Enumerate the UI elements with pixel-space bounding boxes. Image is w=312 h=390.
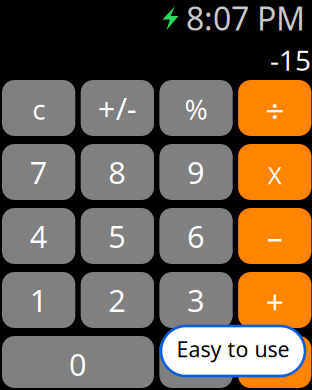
staticText: Easy to use: [176, 335, 289, 363]
button[interactable]: X: [238, 144, 311, 200]
button[interactable]: 3: [159, 272, 233, 328]
button[interactable]: 1: [2, 272, 75, 328]
staticText: 4: [30, 216, 48, 256]
staticText: ÷: [265, 88, 284, 132]
button[interactable]: c: [2, 80, 75, 136]
staticText: 8:07 PM: [186, 0, 305, 39]
button[interactable]: %: [159, 80, 233, 136]
staticText: c: [32, 90, 45, 128]
staticText: 1: [30, 280, 48, 320]
button[interactable]: 0: [2, 336, 154, 388]
button[interactable]: 4: [2, 208, 75, 264]
button[interactable]: +: [238, 272, 311, 328]
button[interactable]: =: [238, 336, 311, 388]
button[interactable]: 5: [81, 208, 154, 264]
staticText: =: [266, 341, 284, 383]
button[interactable]: Easy to use: [161, 326, 305, 376]
staticText: –: [267, 216, 283, 258]
button[interactable]: 6: [159, 208, 233, 264]
staticText: 7: [30, 152, 48, 192]
button[interactable]: ÷: [238, 80, 311, 136]
staticText: 0: [69, 344, 87, 384]
button[interactable]: .: [159, 336, 233, 388]
staticText: 3: [187, 280, 205, 320]
button[interactable]: 9: [159, 144, 233, 200]
staticText: 2: [108, 280, 126, 320]
staticText: 5: [108, 216, 126, 256]
staticText: X: [268, 159, 282, 191]
staticText: -15: [270, 41, 311, 79]
staticText: 8: [108, 152, 126, 192]
button[interactable]: 8: [81, 144, 154, 200]
button[interactable]: –: [238, 208, 311, 264]
button[interactable]: 2: [81, 272, 154, 328]
staticText: %: [185, 90, 208, 128]
staticText: .: [192, 342, 200, 382]
button[interactable]: 7: [2, 144, 75, 200]
staticText: 9: [187, 152, 205, 192]
staticText: +: [266, 281, 284, 323]
staticText: 6: [187, 216, 205, 256]
button[interactable]: +/-: [81, 80, 154, 136]
staticText: +/-: [98, 88, 137, 128]
